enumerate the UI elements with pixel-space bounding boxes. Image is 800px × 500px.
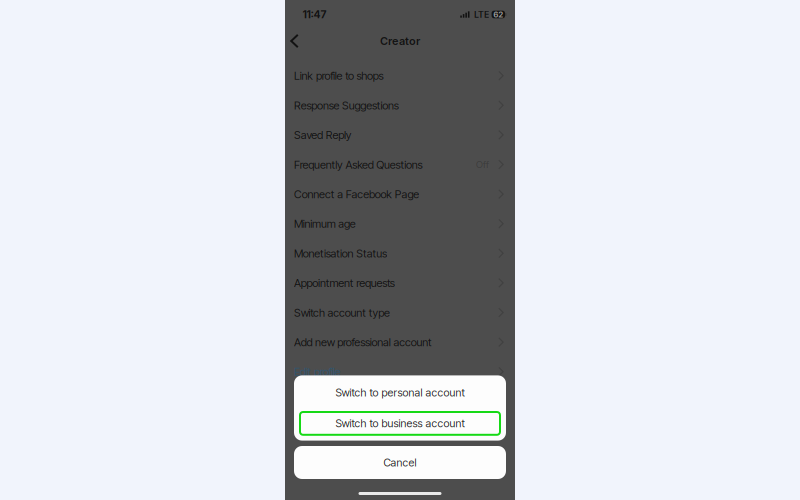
button[interactable]: Frequently Asked Questions [285,150,515,179]
staticText: Monetisation Status [294,247,387,260]
staticText: Switch account type [294,306,390,319]
button[interactable]: Switch to business account [300,412,500,435]
staticText: Switch to business account [335,417,464,430]
button[interactable]: Monetisation Status [285,239,515,268]
button[interactable]: Switch to personal account [300,381,500,404]
staticText: Add new professional account [294,335,432,349]
button[interactable]: Edit profile [285,357,515,387]
button[interactable]: Cancel [294,446,506,479]
staticText: Off [476,159,489,170]
staticText: Cancel [383,456,416,469]
button[interactable]: Connect a Facebook Page [285,179,515,209]
button[interactable]: Response Suggestions [285,91,515,120]
button[interactable]: Minimum age [285,209,515,239]
staticText: Edit profile [294,365,341,378]
staticText: 62 [493,10,503,19]
button[interactable]: Appointment requests [285,268,515,298]
staticText: Switch to personal account [335,386,464,399]
staticText: Response Suggestions [294,99,399,112]
staticText: Minimum age [294,217,356,230]
staticText: Creator [380,34,420,48]
staticText: 11:47 [303,8,327,21]
button[interactable]: Link profile to shops [285,61,515,91]
button[interactable]: Back [286,30,302,52]
staticText: Frequently Asked Questions [294,158,422,171]
staticText: Appointment requests [294,276,395,290]
button[interactable]: Add new professional account [285,327,515,357]
button[interactable]: Saved Reply [285,120,515,150]
staticText: LTE [474,9,489,20]
button[interactable]: Switch account type [285,298,515,327]
staticText: Connect a Facebook Page [294,187,419,201]
staticText: Saved Reply [294,128,352,142]
staticText: Link profile to shops [294,69,384,82]
